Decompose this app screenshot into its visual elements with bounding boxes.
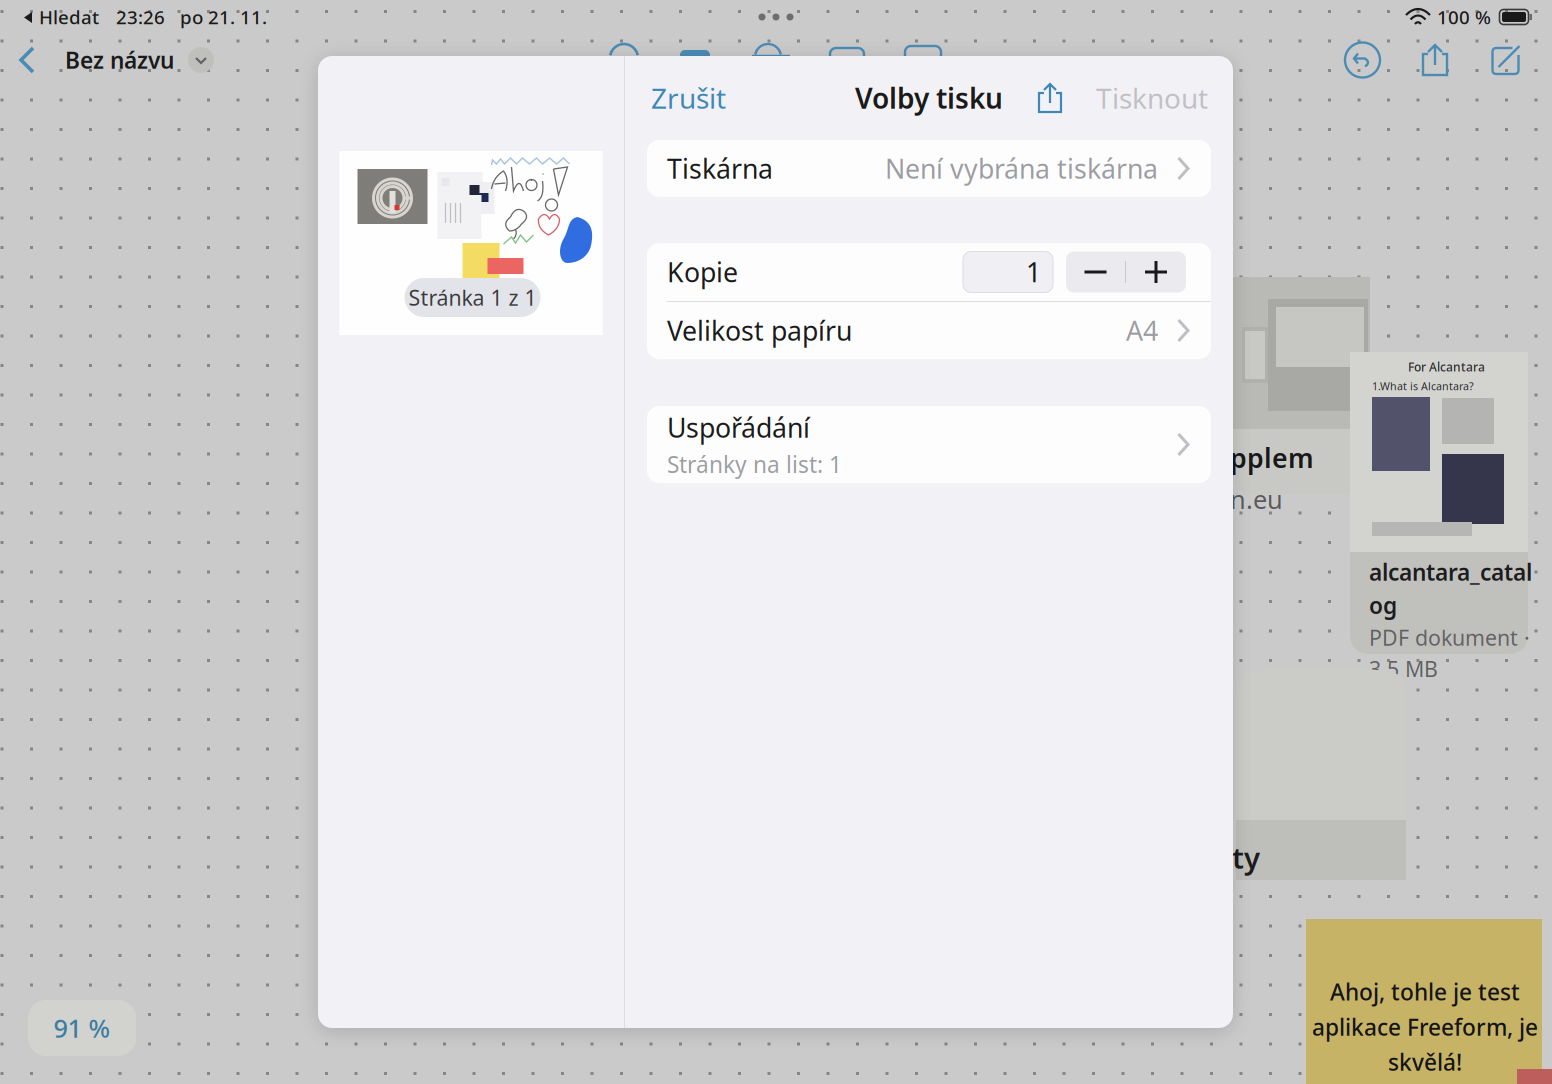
- button[interactable]: Share: [1420, 42, 1450, 77]
- staticText: Velikost papíru: [667, 313, 852, 348]
- staticText: Volby tisku: [855, 79, 1003, 117]
- staticText: Tisknout: [1096, 79, 1208, 117]
- staticText: Stránka 1 z 1: [408, 283, 536, 312]
- staticText: 91 %: [53, 1011, 110, 1045]
- staticText: Zrušit: [651, 79, 726, 117]
- staticText: Bez názvu: [65, 45, 174, 75]
- staticText: Stránky na list: 1: [667, 449, 842, 479]
- button[interactable]: Back to Search: [23, 5, 99, 29]
- staticText: n.eu: [1230, 482, 1283, 516]
- button[interactable]: Share: [1030, 74, 1070, 122]
- staticText: 1.What is Alcantara?: [1372, 379, 1474, 393]
- staticText: og: [1369, 590, 1397, 620]
- button[interactable]: Uspořádání: [647, 406, 1211, 483]
- button[interactable]: Zrušit: [647, 69, 730, 127]
- staticText: 23:26: [116, 5, 165, 29]
- button[interactable]: 91 %: [28, 1000, 136, 1056]
- button[interactable]: Undo: [1345, 42, 1380, 77]
- staticText: alcantara_catal: [1369, 557, 1532, 587]
- staticText: 3,5 MB: [1369, 654, 1438, 683]
- button[interactable]: Decrement: [1066, 251, 1125, 292]
- staticText: po 21. 11.: [180, 5, 267, 29]
- staticText: 1: [1026, 254, 1041, 290]
- staticText: A4: [1126, 313, 1158, 348]
- staticText: PDF dokument ·: [1369, 623, 1530, 651]
- button[interactable]: Increment: [1126, 251, 1186, 292]
- button[interactable]: New: [1490, 43, 1523, 76]
- staticText: ty: [1232, 838, 1260, 877]
- staticText: Tiskárna: [667, 151, 773, 186]
- staticText: Hledat: [39, 5, 99, 29]
- staticText: 100 %: [1437, 5, 1491, 29]
- staticText: Uspořádání: [667, 410, 810, 445]
- button[interactable]: Tiskárna: [647, 140, 1211, 197]
- staticText: aplikace Freeform, je: [1312, 1012, 1538, 1042]
- staticText: For Alcantara: [1408, 359, 1485, 375]
- button[interactable]: Tisknout: [1092, 69, 1212, 127]
- button[interactable]: Document options: [188, 47, 214, 73]
- staticText: pplem: [1230, 440, 1314, 475]
- staticText: Kopie: [667, 254, 738, 290]
- staticText: Ahoj, tohle je test: [1330, 977, 1520, 1007]
- staticText: Není vybrána tiskárna: [885, 151, 1158, 186]
- staticText: skvělá!: [1388, 1047, 1462, 1077]
- button[interactable]: Back: [9, 45, 45, 75]
